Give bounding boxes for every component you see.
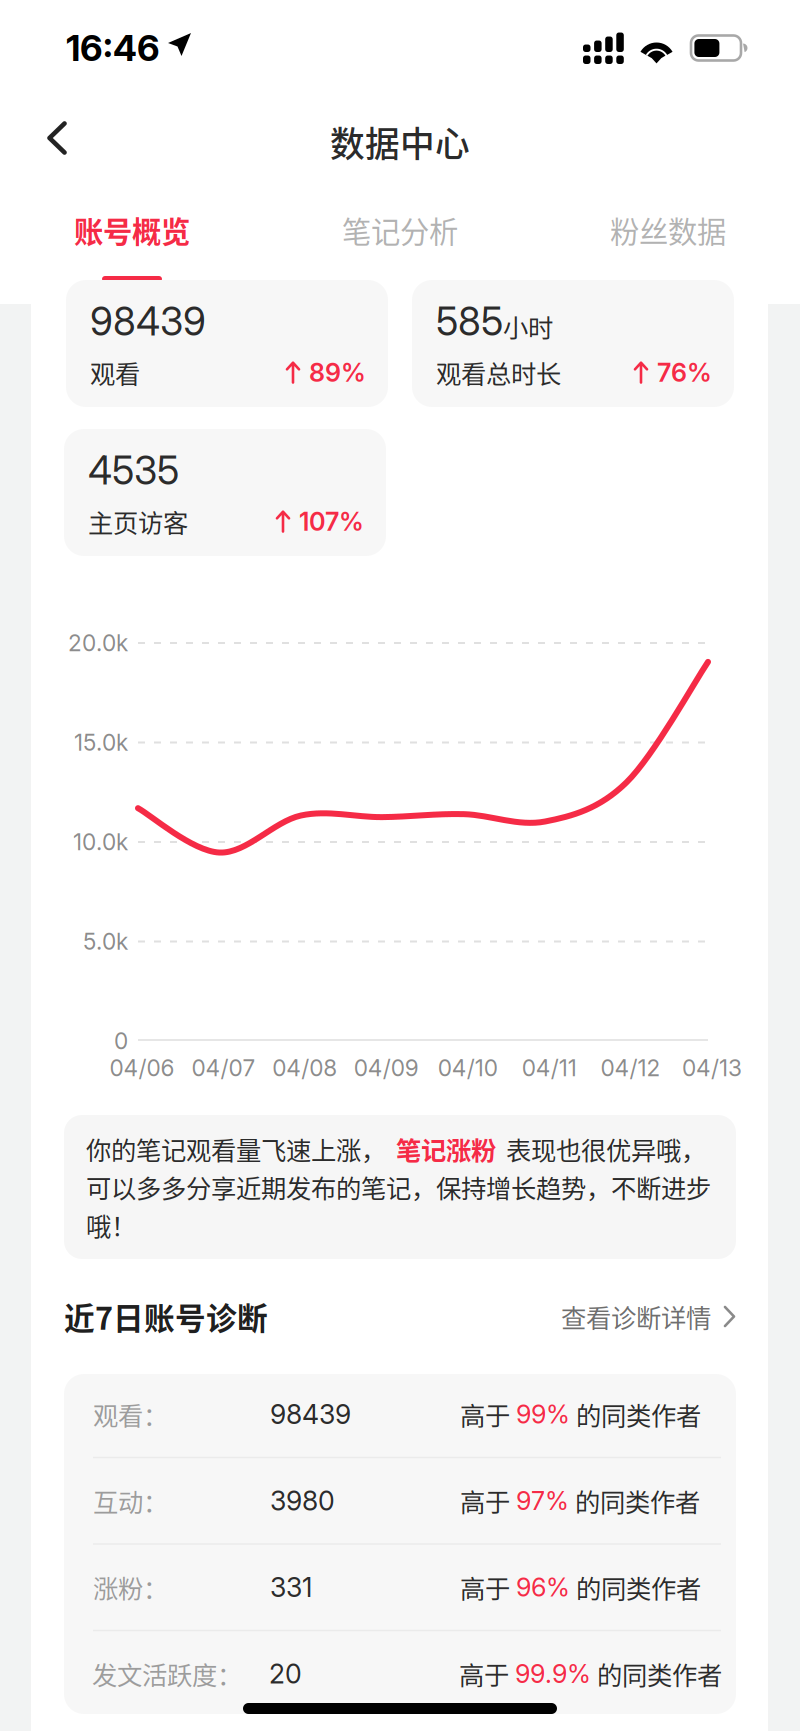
- staticText: 04/08: [272, 1054, 337, 1082]
- button[interactable]: Back: [25, 110, 89, 174]
- staticText: 互动：: [93, 1482, 168, 1519]
- staticText: 10.0k: [73, 828, 128, 856]
- staticText: 76%: [657, 357, 712, 388]
- staticText: 发文活跃度：: [92, 1655, 242, 1692]
- staticText: 04/13: [682, 1054, 742, 1082]
- staticText: 查看诊断详情: [561, 1298, 711, 1335]
- staticText: 89%: [309, 357, 366, 388]
- button[interactable]: 查看诊断详情: [561, 1291, 736, 1341]
- staticText: 你的笔记观看量飞速上涨，: [86, 1131, 386, 1167]
- staticText: 笔记涨粉: [396, 1131, 496, 1167]
- staticText: 的同类作者: [570, 1569, 701, 1606]
- staticText: 107%: [299, 506, 364, 537]
- staticText: 高于: [460, 1396, 516, 1433]
- staticText: 的同类作者: [569, 1482, 700, 1519]
- staticText: 99.9%: [515, 1658, 591, 1689]
- staticText: 观看: [90, 354, 140, 391]
- staticText: 99%: [516, 1399, 570, 1430]
- staticText: 16:46: [66, 26, 160, 70]
- staticText: 0: [114, 1027, 128, 1055]
- staticText: 04/06: [109, 1054, 174, 1082]
- staticText: 15.0k: [74, 729, 128, 756]
- staticText: 小时: [503, 308, 553, 345]
- button[interactable]: 粉丝数据: [578, 188, 758, 304]
- staticText: 高于: [460, 1482, 516, 1519]
- staticText: 观看总时长: [436, 354, 561, 391]
- staticText: 可以多多分享近期发布的笔记，保持增长趋势，不断进步: [86, 1169, 711, 1205]
- staticText: 04/12: [601, 1054, 661, 1082]
- staticText: 04/07: [191, 1054, 255, 1082]
- staticText: 5.0k: [83, 928, 128, 955]
- staticText: 97%: [516, 1485, 569, 1516]
- staticText: 主页访客: [88, 503, 188, 540]
- staticText: 331: [270, 1571, 312, 1603]
- staticText: 96%: [516, 1572, 570, 1603]
- staticText: 585: [436, 298, 503, 345]
- staticText: 04/09: [354, 1054, 419, 1082]
- staticText: 近7日账号诊断: [64, 1294, 268, 1339]
- staticText: 涨粉：: [93, 1569, 168, 1606]
- staticText: 笔记分析: [342, 209, 458, 251]
- staticText: 哦！: [86, 1207, 136, 1243]
- staticText: 04/11: [522, 1054, 577, 1082]
- staticText: 账号概览: [74, 209, 190, 251]
- staticText: 3980: [270, 1485, 335, 1517]
- staticText: 观看：: [93, 1396, 168, 1433]
- staticText: 粉丝数据: [610, 209, 726, 251]
- button[interactable]: 账号概览: [42, 188, 222, 304]
- staticText: 高于: [459, 1655, 515, 1692]
- staticText: 数据中心: [330, 117, 470, 167]
- staticText: 98439: [270, 1398, 351, 1430]
- staticText: 20.0k: [68, 629, 128, 657]
- staticText: 4535: [88, 447, 179, 494]
- staticText: 的同类作者: [570, 1396, 701, 1433]
- button[interactable]: 笔记分析: [310, 188, 490, 304]
- staticText: 04/10: [438, 1054, 498, 1082]
- staticText: 98439: [90, 298, 206, 345]
- staticText: 高于: [460, 1569, 516, 1606]
- staticText: 的同类作者: [591, 1655, 722, 1692]
- staticText: 表现也很优异哦，: [506, 1131, 706, 1167]
- staticText: 20: [269, 1658, 302, 1690]
